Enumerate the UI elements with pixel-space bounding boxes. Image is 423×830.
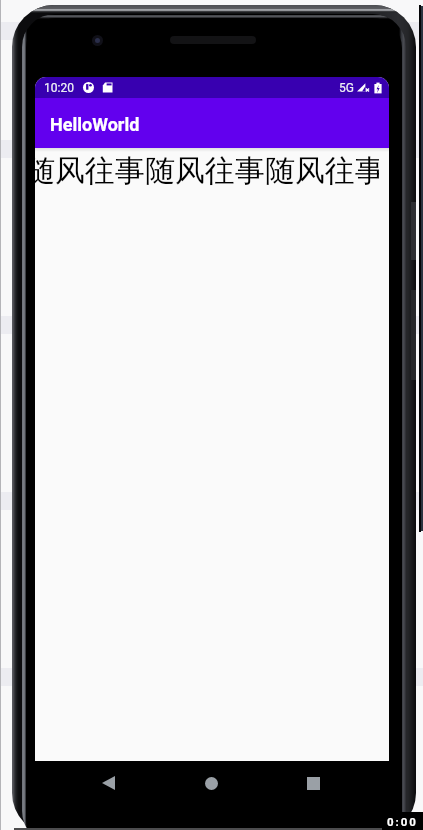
button[interactable]: HelloWorld <box>35 98 389 148</box>
staticText: 10:20 <box>44 81 74 95</box>
staticText: 随风往事随风往事随风往事 <box>35 152 379 190</box>
button[interactable]: Back <box>96 771 120 795</box>
staticText: 0:00 <box>387 815 418 828</box>
staticText: 5G <box>339 81 354 95</box>
button[interactable]: Home <box>199 771 223 795</box>
button[interactable]: Recent apps <box>301 771 325 795</box>
staticText: HelloWorld <box>50 114 140 135</box>
